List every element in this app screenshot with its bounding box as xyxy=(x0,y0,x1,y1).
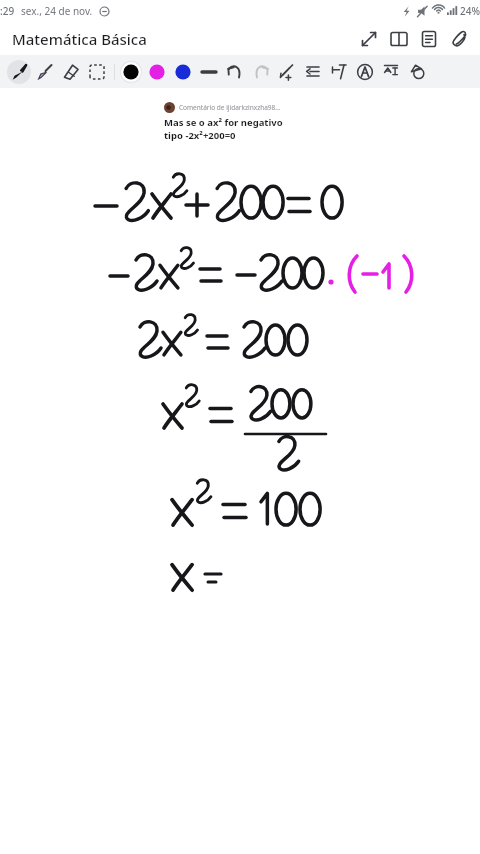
button[interactable]: Pen xyxy=(6,59,32,85)
staticText: tipo -2x²+200=0 xyxy=(164,129,236,142)
button[interactable]: Shapes xyxy=(404,59,430,85)
staticText: 24% xyxy=(460,4,480,18)
staticText: Mas se o ax² for negativo xyxy=(164,116,283,129)
button[interactable]: Matemática Básica xyxy=(12,29,147,49)
button[interactable]: Two page view xyxy=(384,24,414,54)
button[interactable]: Attach xyxy=(444,24,474,54)
staticText: Comentário de ijidarkzinxzha98... xyxy=(179,103,281,112)
button[interactable]: Insert drawing xyxy=(274,59,300,85)
button[interactable]: Expand xyxy=(354,24,384,54)
button[interactable]: Font xyxy=(352,59,378,85)
button[interactable]: Colour xyxy=(170,59,196,85)
button[interactable]: Eraser xyxy=(58,59,84,85)
button[interactable]: Select xyxy=(84,59,110,85)
button[interactable]: Notes xyxy=(414,24,444,54)
button[interactable]: Highlighter xyxy=(32,59,58,85)
staticText: sex., 24 de nov. xyxy=(21,4,93,18)
button[interactable]: Stroke width xyxy=(196,59,222,85)
button[interactable]: Text box xyxy=(378,59,404,85)
button[interactable]: Align xyxy=(300,59,326,85)
button[interactable]: Undo xyxy=(222,59,248,85)
button[interactable]: Text style xyxy=(326,59,352,85)
button[interactable]: Colour xyxy=(118,59,144,85)
button[interactable]: Comentário de ijidarkzinxzha98... xyxy=(157,97,297,148)
staticText: :29 xyxy=(0,4,15,18)
button[interactable]: Colour xyxy=(144,59,170,85)
button[interactable]: Redo xyxy=(248,59,274,85)
